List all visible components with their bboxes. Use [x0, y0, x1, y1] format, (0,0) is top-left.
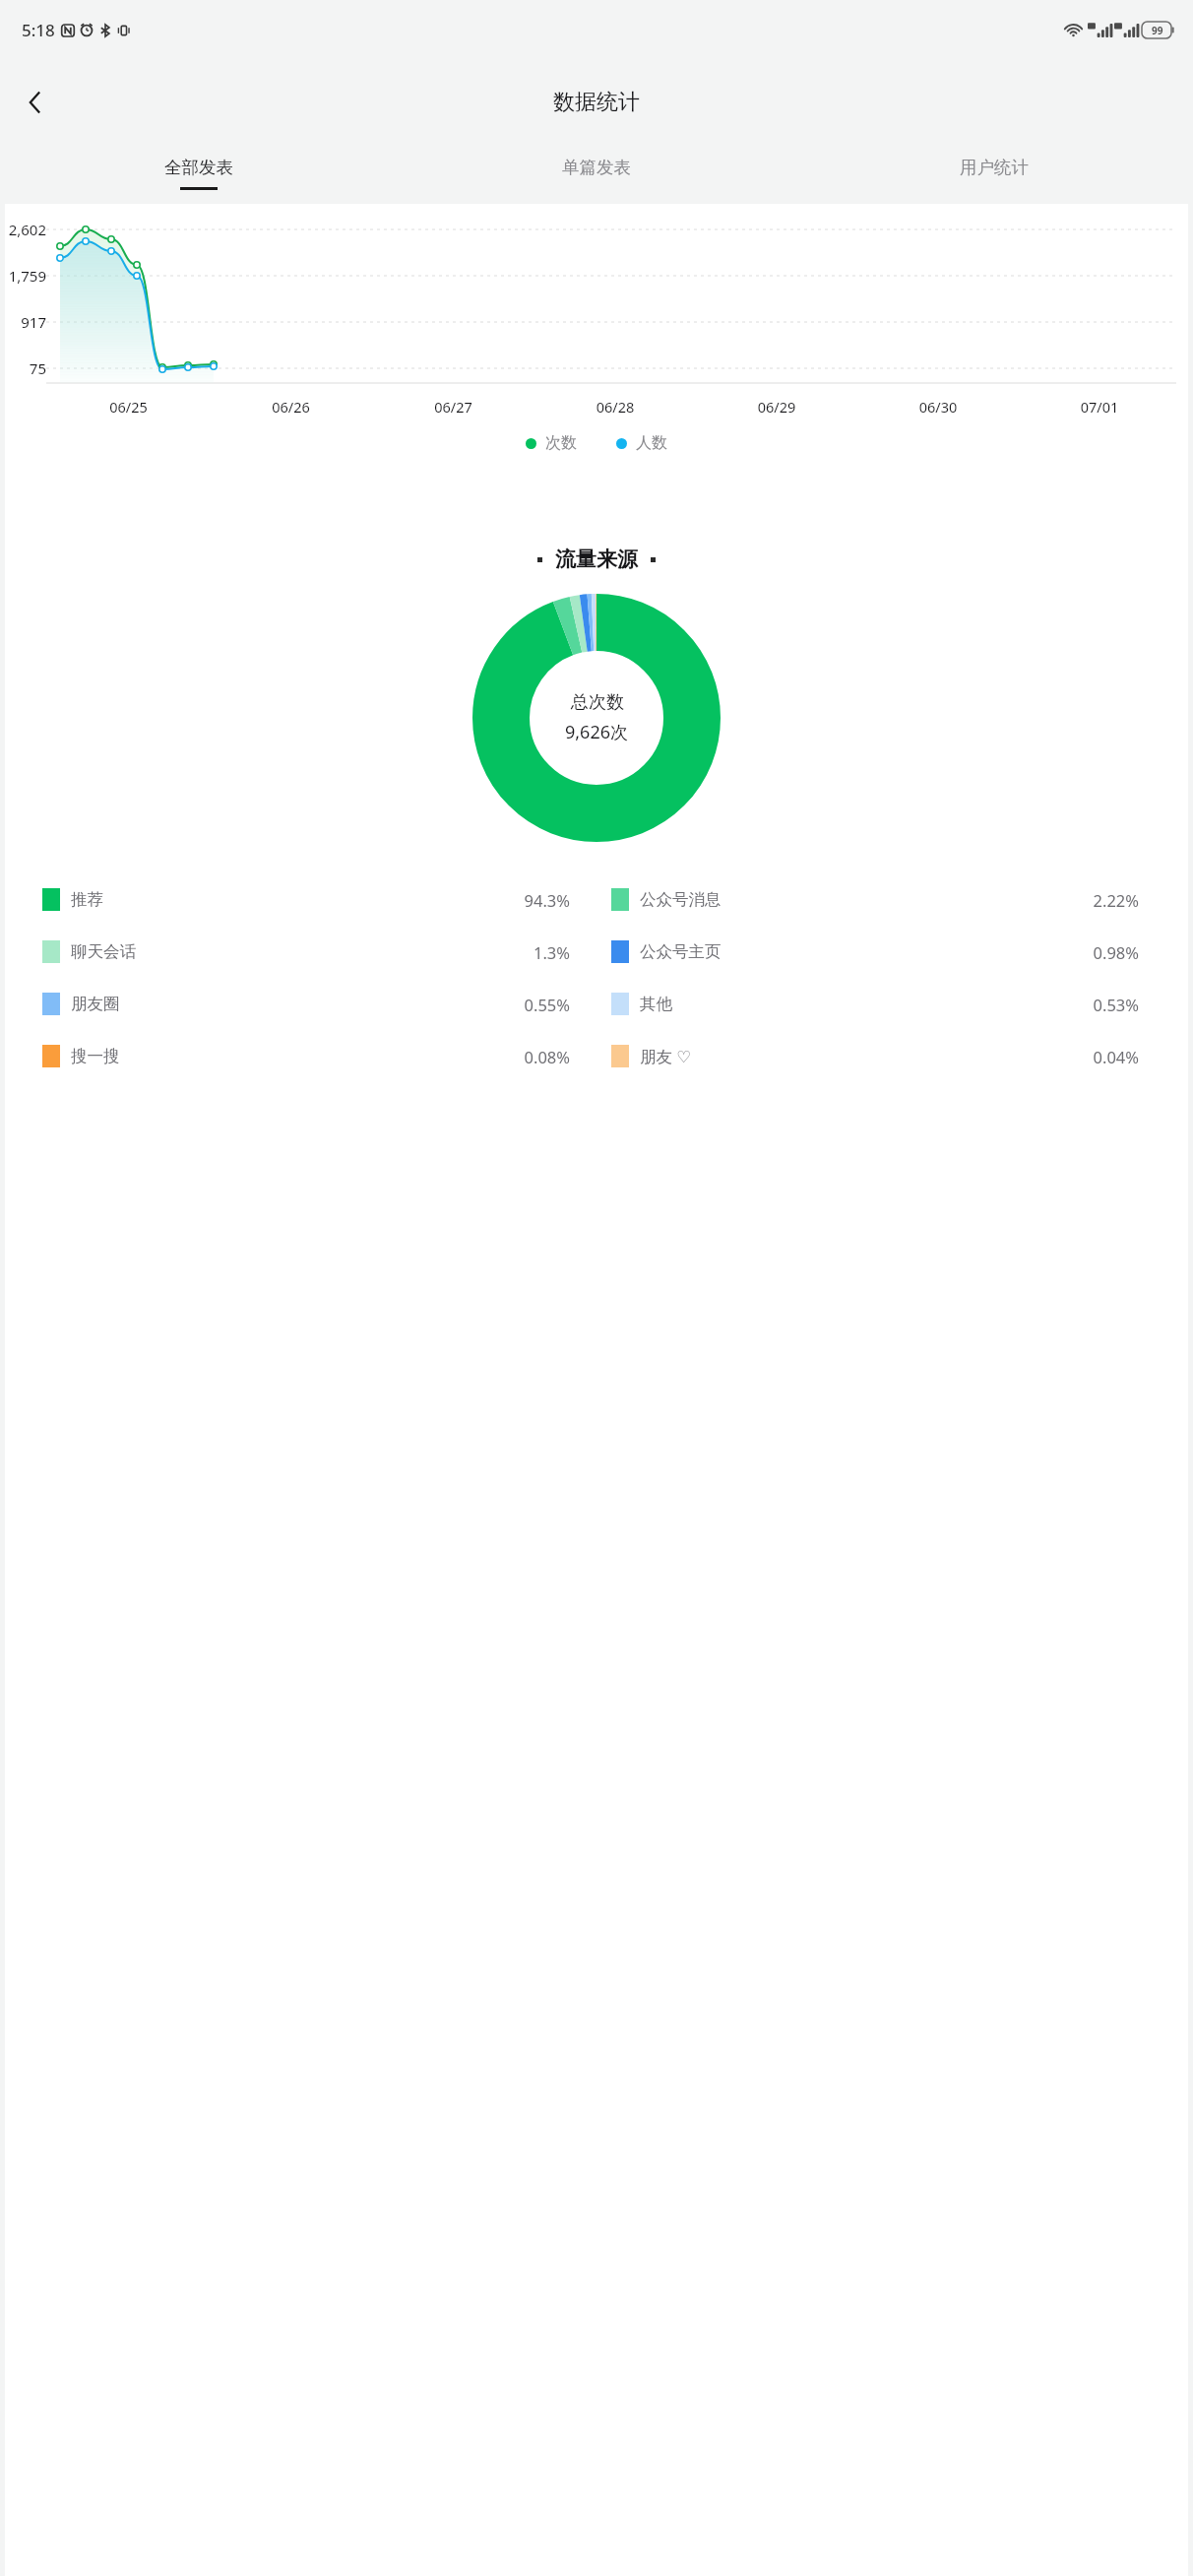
button[interactable]: 搜一搜	[42, 1030, 584, 1082]
staticText: 06/27	[372, 397, 534, 417]
staticText: 流量来源	[555, 547, 638, 572]
staticText: 1.3%	[533, 941, 570, 963]
staticText: 9,626次	[565, 720, 629, 744]
staticText: 人数	[636, 433, 667, 453]
button[interactable]: 公众号主页	[611, 926, 1153, 978]
staticText: 朋友圈	[71, 994, 120, 1014]
staticText: 单篇发表	[562, 157, 631, 178]
staticText: 0.55%	[524, 994, 570, 1015]
staticText: 数据统计	[553, 89, 640, 116]
staticText: 0.98%	[1093, 941, 1139, 963]
button[interactable]: 聊天会话	[42, 926, 584, 978]
button[interactable]: 人数	[616, 433, 667, 453]
staticText: 朋友 ♡	[640, 1045, 692, 1067]
button[interactable]: 推荐	[42, 873, 584, 926]
staticText: 搜一搜	[71, 1046, 120, 1066]
staticText: 公众号主页	[640, 941, 722, 962]
staticText: 99	[1152, 24, 1163, 37]
button[interactable]: 其他	[611, 978, 1153, 1030]
button[interactable]: 朋友圈	[42, 978, 584, 1030]
staticText: 06/26	[210, 397, 372, 417]
staticText: 0.53%	[1093, 994, 1139, 1015]
staticText: 917	[5, 312, 46, 332]
staticText: 全部发表	[164, 157, 233, 178]
staticText: 聊天会话	[71, 941, 136, 962]
staticText: 07/01	[1019, 397, 1180, 417]
staticText: 2,602	[5, 220, 46, 239]
staticText: 0.04%	[1093, 1046, 1139, 1067]
button[interactable]: 全部发表	[0, 146, 398, 202]
staticText: 06/29	[696, 397, 857, 417]
staticText: 1,759	[5, 266, 46, 286]
staticText: 推荐	[71, 889, 103, 910]
button[interactable]: 公众号消息	[611, 873, 1153, 926]
staticText: 用户统计	[960, 157, 1029, 178]
staticText: 75	[5, 358, 46, 378]
staticText: 公众号消息	[640, 889, 722, 910]
button[interactable]: 单篇发表	[398, 146, 795, 202]
button[interactable]: Back	[8, 75, 63, 130]
staticText: 0.08%	[524, 1046, 570, 1067]
staticText: 06/30	[857, 397, 1019, 417]
staticText: 2.22%	[1093, 889, 1139, 911]
button[interactable]: 朋友 ♡	[611, 1030, 1153, 1082]
button[interactable]: 用户统计	[795, 146, 1193, 202]
staticText: 94.3%	[524, 889, 570, 911]
staticText: 其他	[640, 994, 672, 1014]
staticText: 5:18	[22, 19, 55, 41]
button[interactable]: 次数	[526, 433, 577, 453]
staticText: 06/28	[534, 397, 696, 417]
staticText: 次数	[545, 433, 577, 453]
staticText: 总次数	[571, 691, 624, 714]
staticText: 06/25	[47, 397, 210, 417]
